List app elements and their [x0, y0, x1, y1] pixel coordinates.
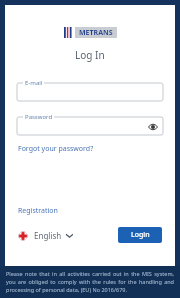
- staticText: Log In: [75, 48, 105, 62]
- button[interactable]: Registration: [18, 206, 58, 216]
- button[interactable]: English: [18, 228, 73, 243]
- staticText: English: [34, 230, 62, 241]
- button[interactable]: Forgot your password?: [18, 144, 94, 154]
- staticText: Password: [25, 113, 53, 121]
- staticText: METRANS: [79, 28, 113, 38]
- staticText: Registration: [18, 206, 58, 216]
- staticText: Forgot your password?: [18, 144, 94, 154]
- staticText: Please note that in all activities carri…: [6, 270, 174, 294]
- staticText: E-mail: [25, 79, 43, 87]
- button[interactable]: Login: [118, 227, 162, 243]
- button[interactable]: Show password: [147, 121, 158, 132]
- button[interactable]: E-mail: [17, 79, 163, 101]
- button[interactable]: Password: [17, 113, 163, 135]
- staticText: Login: [131, 230, 150, 240]
